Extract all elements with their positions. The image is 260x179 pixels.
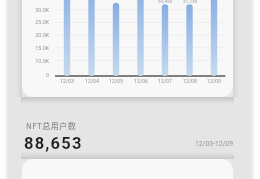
staticText: 12/07 [153,78,177,84]
staticText: 12/09 [202,78,226,84]
staticText: 30.0K [23,7,49,13]
staticText: 12/08 [178,78,202,84]
staticText: 31,1xx [178,0,202,4]
staticText: 10.0K [23,58,49,64]
staticText: NFT总用户数 [26,120,77,132]
staticText: 12/06 [129,78,153,84]
staticText: 30,4xx [153,0,177,4]
staticText: 0 [23,72,49,78]
button[interactable]: NFT总用户数 [14,112,240,158]
button[interactable]: 30,4xx [22,0,233,97]
staticText: 12/04 [80,78,104,84]
staticText: 12/05 [104,78,128,84]
staticText: 88,653 [24,134,83,153]
staticText: 12/03-12/09 [156,140,233,148]
staticText: 12/03 [55,78,79,84]
staticText: 15.0K [23,45,49,51]
staticText: 25.0K [23,19,49,25]
staticText: 20.0K [23,32,49,38]
